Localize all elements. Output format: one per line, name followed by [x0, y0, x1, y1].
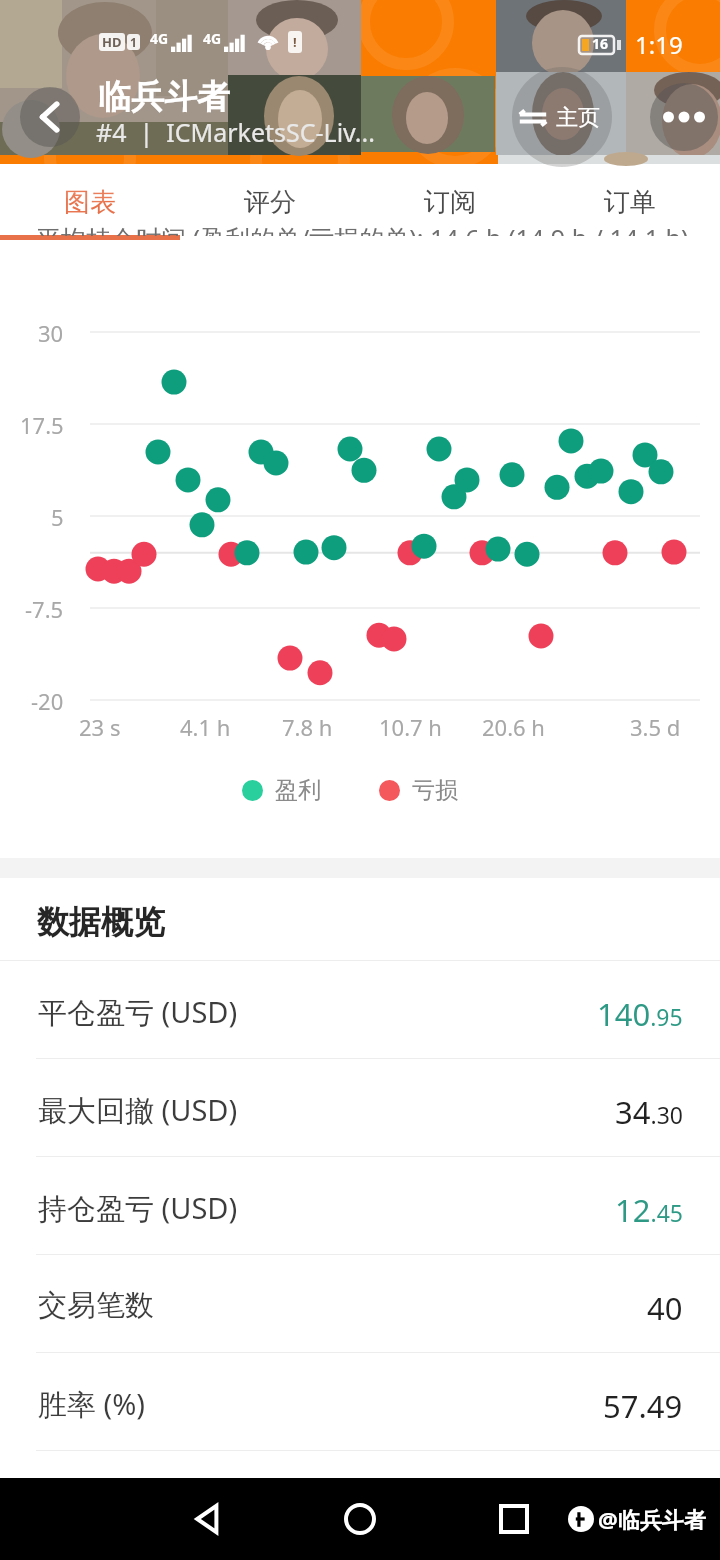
- staticText: 40: [647, 1287, 683, 1329]
- staticText: 临兵斗者: [98, 76, 230, 118]
- staticText: 订单: [604, 186, 656, 219]
- button[interactable]: 订单: [540, 164, 720, 240]
- staticText: 20.6 h: [482, 712, 545, 742]
- staticText: 图表: [64, 186, 116, 219]
- staticText: 23 s: [79, 712, 121, 742]
- button[interactable]: Back: [173, 1484, 243, 1554]
- button[interactable]: Home: [325, 1484, 395, 1554]
- staticText: -7.5: [25, 594, 64, 624]
- staticText: 盈利: [275, 776, 321, 805]
- button[interactable]: 主页: [512, 92, 606, 144]
- staticText: 1:19: [635, 28, 683, 61]
- button[interactable]: More options: [650, 83, 718, 151]
- staticText: 34.30: [615, 1091, 683, 1133]
- button[interactable]: 平仓盈亏 (USD): [0, 961, 720, 1058]
- staticText: 平均持仓时间 (盈利的单/亏损的单): 14.6 h (14.9 h / 14.…: [36, 221, 689, 236]
- staticText: 7.8 h: [282, 712, 333, 742]
- button[interactable]: #4 | ICMarketsSC-Liv...: [96, 115, 376, 163]
- staticText: 16: [592, 34, 609, 53]
- button[interactable]: 订阅: [360, 164, 540, 240]
- staticText: !: [293, 33, 297, 51]
- staticText: 主页: [556, 104, 600, 132]
- staticText: 57.49: [603, 1385, 683, 1427]
- staticText: 持仓盈亏 (USD): [38, 1188, 238, 1228]
- staticText: 评分: [244, 186, 296, 219]
- staticText: #4 | ICMarketsSC-Liv...: [96, 115, 375, 149]
- staticText: @临兵斗者: [598, 1504, 706, 1534]
- button[interactable]: 交易笔数: [0, 1255, 720, 1352]
- staticText: 17.5: [20, 410, 64, 440]
- button[interactable]: 最大回撤 (USD): [0, 1059, 720, 1156]
- button[interactable]: 评分: [180, 164, 360, 240]
- staticText: 胜率 (%): [38, 1384, 146, 1424]
- button[interactable]: 持仓盈亏 (USD): [0, 1157, 720, 1254]
- button[interactable]: Recent apps: [479, 1484, 549, 1554]
- staticText: 3.5 d: [630, 712, 681, 742]
- button[interactable]: 图表: [0, 164, 180, 240]
- staticText: 交易笔数: [38, 1287, 154, 1324]
- staticText: 5: [51, 502, 64, 532]
- staticText: 1: [130, 34, 137, 50]
- staticText: 最大回撤 (USD): [38, 1090, 238, 1130]
- staticText: 平仓盈亏 (USD): [38, 992, 238, 1032]
- staticText: 10.7 h: [379, 712, 442, 742]
- staticText: 30: [38, 318, 64, 348]
- staticText: 亏损: [412, 776, 458, 805]
- staticText: 订阅: [424, 186, 476, 219]
- button[interactable]: Back: [16, 83, 84, 151]
- staticText: 4.1 h: [180, 712, 231, 742]
- staticText: -20: [31, 686, 64, 716]
- staticText: HD: [102, 33, 122, 51]
- staticText: 数据概览: [37, 902, 165, 942]
- staticText: 4G: [150, 29, 169, 48]
- staticText: 140.95: [597, 993, 683, 1035]
- staticText: 12.45: [615, 1189, 683, 1231]
- staticText: 4G: [203, 29, 222, 48]
- button[interactable]: 胜率 (%): [0, 1353, 720, 1450]
